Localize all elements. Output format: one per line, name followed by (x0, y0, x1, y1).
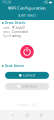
staticText: Disconnect (21, 85, 36, 88)
button[interactable]: Recents (40, 114, 43, 116)
button[interactable]: Disconnect (5, 83, 49, 90)
staticText: Quick Actions (5, 64, 24, 68)
staticText: 10:24 (2, 1, 11, 4)
staticText: Status (3, 30, 10, 34)
staticText: Connected (12, 30, 28, 34)
button[interactable]: Connect (5, 72, 49, 79)
staticText: 4G (44, 1, 48, 4)
button[interactable]: Home (26, 114, 29, 116)
staticText: Strong (12, 34, 21, 38)
button[interactable]: Power (20, 45, 34, 58)
staticText: TP-Link_01 (12, 26, 26, 30)
staticText: Connect (23, 74, 35, 77)
staticText: Name (3, 26, 10, 30)
staticText: Device Details (5, 21, 25, 25)
staticText: WiFi Configuration (8, 5, 46, 11)
staticText: Search devices (18, 14, 36, 17)
staticText: Signal (3, 34, 11, 38)
staticText: Version 1.0.3 (17, 103, 37, 107)
